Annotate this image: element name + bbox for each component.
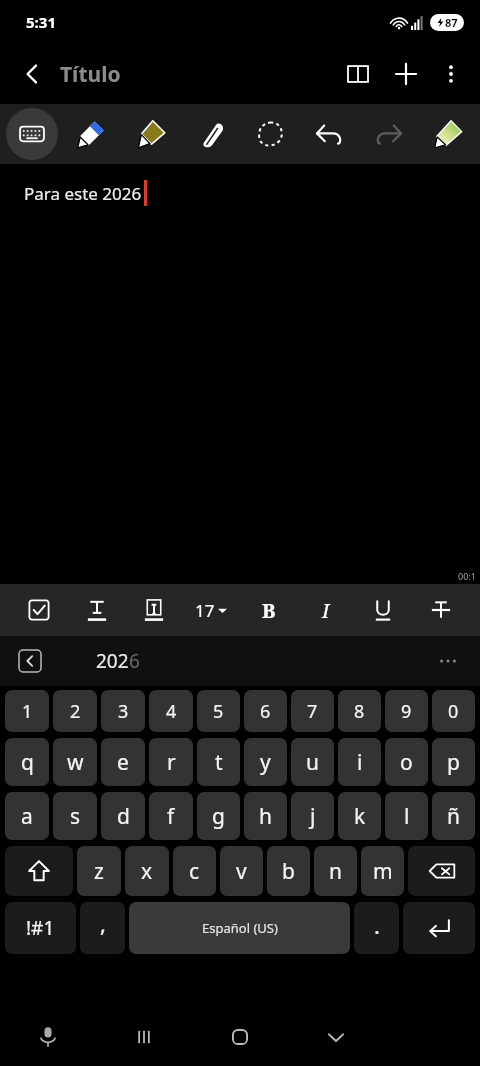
staticText: 00:1 [458,570,476,582]
button[interactable]: 1 [5,690,49,732]
button[interactable]: 9 [385,690,428,732]
button[interactable]: Highlighter [125,108,177,160]
button[interactable]: j [291,792,334,840]
button[interactable]: Underline [361,588,405,632]
button[interactable]: Backspace [408,846,475,896]
button[interactable]: w [53,738,97,786]
button[interactable]: More options [430,53,472,95]
button[interactable]: 3 [101,690,145,732]
staticText: d [117,802,130,831]
staticText: 6 [260,699,271,724]
button[interactable]: Undo [303,108,355,160]
staticText: c [189,857,200,886]
staticText: p [447,748,460,777]
button[interactable]: Back [8,50,56,98]
staticText: , [100,908,106,938]
button[interactable]: Español (US) [129,902,350,954]
button[interactable]: Reading view [334,50,382,98]
button[interactable]: Eraser [184,108,236,160]
button[interactable]: Previous suggestions [16,647,44,675]
button[interactable]: Redo [363,108,415,160]
staticText: 3 [118,699,129,724]
button[interactable]: More [430,643,466,679]
button[interactable]: d [101,792,145,840]
button[interactable]: Add [382,50,430,98]
button[interactable]: y [244,738,287,786]
staticText: . [374,910,380,940]
button[interactable]: Text color [75,588,119,632]
button[interactable]: B [247,588,291,632]
button[interactable]: r [149,738,193,786]
button[interactable]: b [267,846,310,896]
button[interactable]: u [291,738,334,786]
button[interactable]: !#1 [5,902,76,954]
button[interactable]: Hide keyboard [288,1008,384,1066]
staticText: l [404,802,410,831]
button[interactable]: o [385,738,428,786]
button[interactable]: e [101,738,145,786]
button[interactable]: i [338,738,381,786]
button[interactable]: f [149,792,193,840]
staticText: m [373,857,393,886]
button[interactable]: c [173,846,216,896]
button[interactable]: Strikethrough [419,588,463,632]
button[interactable]: 17 [189,588,233,632]
button[interactable]: n [314,846,357,896]
staticText: j [310,802,316,831]
button[interactable]: g [197,792,240,840]
staticText: e [117,748,129,777]
button[interactable]: Voice input [0,1008,96,1066]
button[interactable]: Recent apps [96,1008,192,1066]
button[interactable]: Text highlight [132,588,176,632]
staticText: !#1 [26,915,55,941]
staticText: f [167,802,175,831]
staticText: w [67,748,84,777]
button[interactable]: 2 [53,690,97,732]
button[interactable]: , [80,902,125,954]
staticText: g [212,802,225,831]
staticText: 4 [166,699,177,724]
button[interactable]: m [361,846,404,896]
button[interactable]: 0 [432,690,475,732]
button[interactable]: q [5,738,49,786]
button[interactable]: 5 [197,690,240,732]
staticText: y [260,748,271,777]
button[interactable]: s [53,792,97,840]
button[interactable]: x [125,846,169,896]
button[interactable]: v [220,846,263,896]
staticText: n [329,857,342,886]
button[interactable]: Checklist [17,588,61,632]
staticText: i [357,748,363,777]
staticText: B [262,597,276,624]
button[interactable]: ñ [432,792,475,840]
button[interactable]: p [432,738,475,786]
button[interactable]: Brush [422,108,474,160]
button[interactable]: Keyboard [6,108,58,160]
staticText: 87 [445,15,458,30]
button[interactable]: . [354,902,399,954]
button[interactable]: t [197,738,240,786]
staticText: a [21,802,33,831]
button[interactable]: l [385,792,428,840]
button[interactable]: I [304,588,348,632]
button[interactable]: h [244,792,287,840]
button[interactable]: 8 [338,690,381,732]
button[interactable]: 7 [291,690,334,732]
button[interactable]: Shift [5,846,73,896]
staticText: 2 [70,699,81,724]
button[interactable]: 4 [149,690,193,732]
staticText: v [236,857,247,886]
button[interactable]: Lasso select [244,108,296,160]
button[interactable]: Pen [65,108,117,160]
button[interactable]: Home [192,1008,288,1066]
staticText: 5:31 [26,12,56,32]
button[interactable]: a [5,792,49,840]
button[interactable]: z [77,846,121,896]
button[interactable]: k [338,792,381,840]
staticText: q [21,748,34,777]
staticText: r [167,748,176,777]
staticText: 0 [448,699,459,724]
button[interactable]: 6 [244,690,287,732]
button[interactable]: Enter [403,902,475,954]
staticText: o [400,748,413,777]
